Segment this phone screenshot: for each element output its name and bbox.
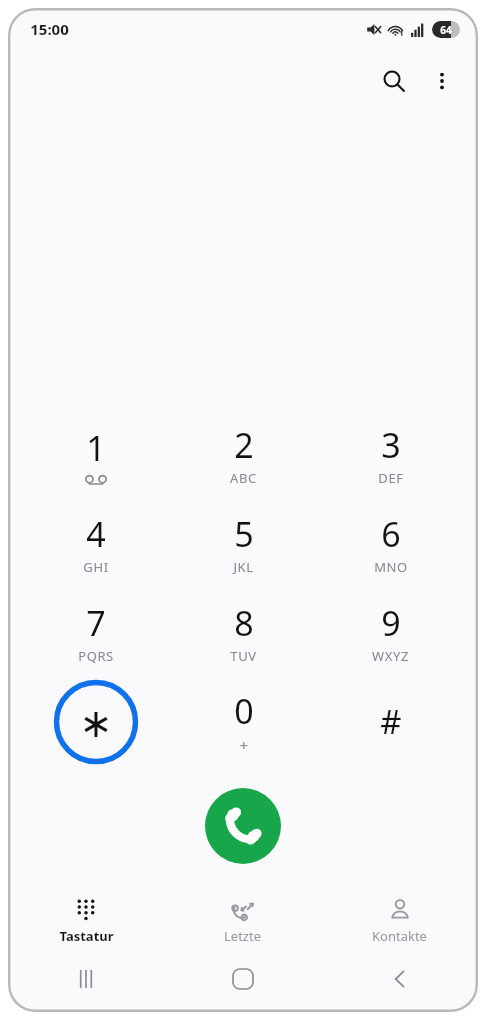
staticText: Letzte (224, 927, 261, 945)
staticText: DEF (378, 469, 404, 487)
button[interactable]: 2 (170, 410, 317, 499)
staticText: + (239, 735, 249, 755)
staticText: 6 (381, 511, 401, 557)
button[interactable]: Home (164, 956, 321, 1002)
button[interactable]: 0 (170, 677, 317, 766)
staticText: WXYZ (372, 647, 409, 665)
button[interactable]: 7 (22, 588, 170, 677)
staticText: 2 (234, 422, 254, 468)
button[interactable]: 6 (317, 499, 464, 588)
staticText: 3 (381, 422, 401, 468)
button[interactable]: Tastatur (8, 892, 164, 950)
button[interactable]: 9 (317, 588, 464, 677)
staticText: # (380, 699, 402, 744)
button[interactable]: Search (370, 57, 418, 105)
button[interactable]: Recents (8, 956, 164, 1002)
button[interactable]: 3 (317, 410, 464, 499)
button[interactable]: Back (321, 956, 478, 1002)
staticText: 64 (440, 23, 452, 37)
staticText: TUV (230, 647, 257, 665)
button[interactable]: Call (205, 788, 281, 864)
button[interactable]: 1 (22, 410, 170, 499)
button[interactable]: Letzte (164, 892, 321, 950)
button[interactable]: 4 (22, 499, 170, 588)
staticText: 1 (86, 425, 106, 471)
button[interactable]: # (317, 677, 464, 766)
staticText: MNO (374, 558, 408, 576)
staticText: GHI (83, 558, 109, 576)
staticText: ∗ (79, 700, 113, 747)
staticText: Kontakte (372, 927, 427, 945)
button[interactable]: Kontakte (321, 892, 478, 950)
button[interactable]: 8 (170, 588, 317, 677)
staticText: 4 (86, 511, 106, 557)
staticText: 15:00 (30, 19, 69, 39)
staticText: PQRS (78, 647, 114, 665)
staticText: Tastatur (59, 927, 114, 945)
staticText: 8 (234, 600, 254, 646)
staticText: 7 (86, 600, 106, 646)
staticText: 9 (381, 600, 401, 646)
staticText: JKL (233, 558, 254, 576)
staticText: ABC (230, 469, 257, 487)
button[interactable]: ∗ (22, 677, 170, 766)
staticText: 5 (234, 511, 254, 557)
staticText: 0 (234, 688, 254, 734)
button[interactable]: More options (418, 57, 466, 105)
button[interactable]: 5 (170, 499, 317, 588)
